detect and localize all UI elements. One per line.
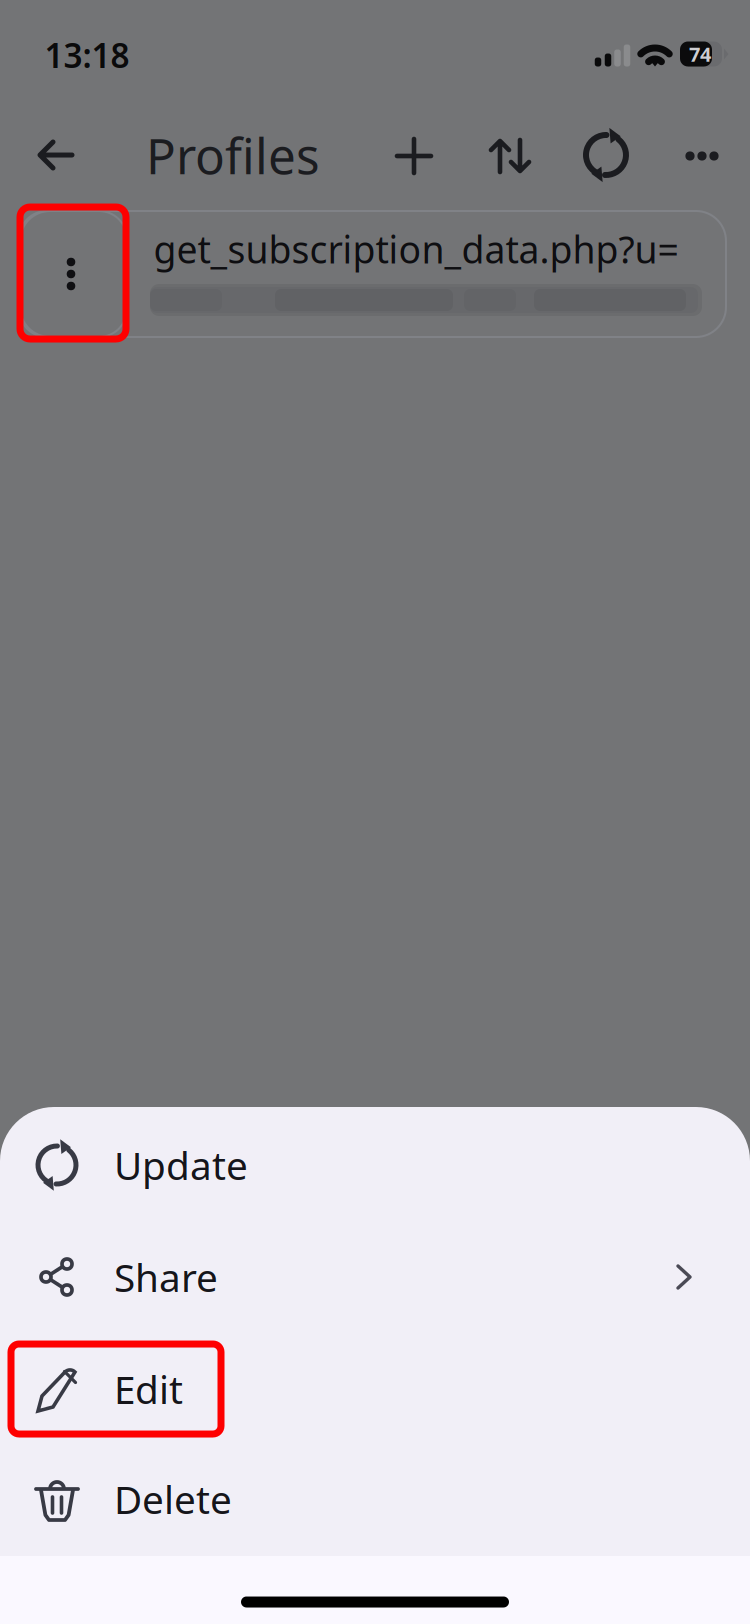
- staticText: Profiles: [146, 122, 320, 188]
- button[interactable]: Share: [0, 1221, 750, 1333]
- button[interactable]: Add: [372, 114, 456, 198]
- staticText: Edit: [114, 1363, 183, 1415]
- staticText: Delete: [114, 1473, 232, 1525]
- button[interactable]: Profiles: [123, 113, 343, 197]
- staticText: 74: [689, 41, 711, 67]
- staticText: 13:18: [44, 33, 129, 77]
- staticText: Share: [114, 1251, 218, 1303]
- button[interactable]: Sort: [468, 114, 552, 198]
- button[interactable]: Edit: [0, 1333, 750, 1445]
- button[interactable]: Back: [14, 113, 98, 197]
- button[interactable]: Delete: [0, 1443, 750, 1555]
- staticText: get_subscription_data.php?u=: [153, 224, 678, 274]
- staticText: Update: [114, 1139, 248, 1191]
- button[interactable]: More options: [660, 114, 744, 198]
- button[interactable]: Row options: [19, 211, 127, 337]
- button[interactable]: Update: [0, 1109, 750, 1221]
- button[interactable]: Refresh: [564, 113, 648, 197]
